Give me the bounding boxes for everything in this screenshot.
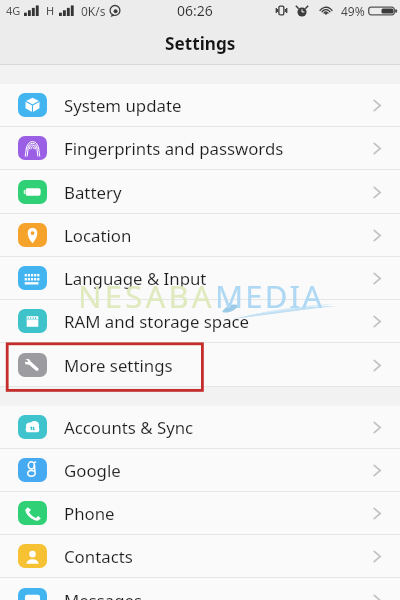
staticText: Fingerprints and passwords [64, 137, 284, 160]
button[interactable]: Language & Input [0, 257, 400, 299]
button[interactable]: Accounts & Sync [0, 406, 400, 448]
staticText: H [46, 3, 55, 18]
button[interactable]: Google [0, 449, 400, 491]
staticText: Settings [165, 32, 236, 55]
button[interactable]: Messages [0, 579, 400, 600]
staticText: 0K/s [81, 3, 106, 19]
staticText: Contacts [64, 545, 133, 568]
staticText: RAM and storage space [64, 310, 250, 333]
staticText: 49% [341, 3, 365, 19]
button[interactable]: Battery [0, 171, 400, 213]
staticText: Battery [64, 181, 122, 204]
staticText: Google [64, 459, 121, 482]
staticText: Phone [64, 502, 115, 525]
staticText: NESABA [78, 275, 215, 317]
button[interactable]: Contacts [0, 535, 400, 577]
staticText: Location [64, 224, 132, 247]
staticText: System update [64, 94, 182, 117]
staticText: Accounts & Sync [64, 416, 194, 439]
staticText: 4G [6, 3, 21, 18]
button[interactable]: More settings [0, 344, 400, 386]
button[interactable]: RAM and storage space [0, 300, 400, 342]
staticText: 06:26 [177, 1, 213, 20]
button[interactable]: Location [0, 214, 400, 256]
staticText: MEDIA [215, 275, 325, 317]
staticText: Language & Input [64, 267, 207, 290]
button[interactable]: Phone [0, 492, 400, 534]
button[interactable]: Fingerprints and passwords [0, 127, 400, 169]
staticText: Messages [64, 589, 143, 600]
staticText: More settings [64, 354, 173, 377]
button[interactable]: System update [0, 84, 400, 126]
